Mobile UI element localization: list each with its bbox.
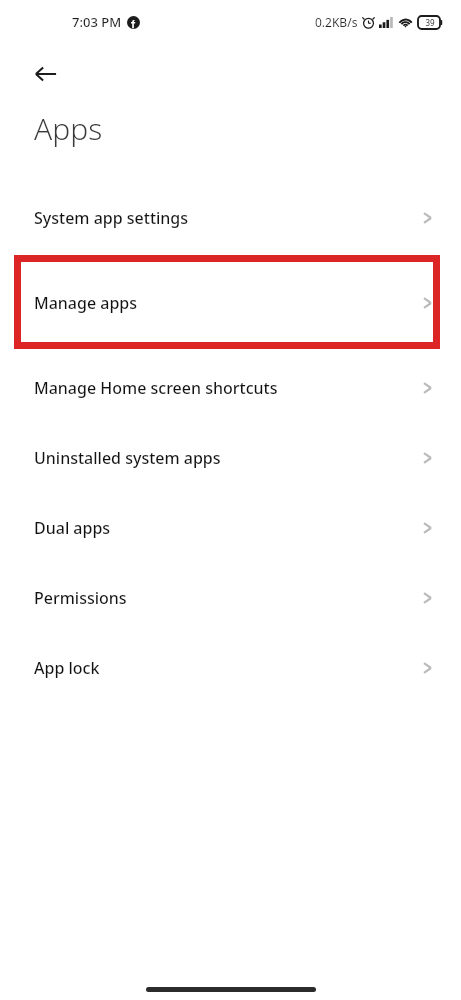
- staticText: Uninstalled system apps: [34, 447, 422, 469]
- button[interactable]: System app settings: [0, 183, 461, 253]
- staticText: 0.2KB/s: [315, 14, 358, 30]
- button[interactable]: Manage Home screen shortcuts: [0, 353, 461, 423]
- button[interactable]: Uninstalled system apps: [0, 423, 461, 493]
- button[interactable]: Dual apps: [0, 493, 461, 563]
- staticText: Manage Home screen shortcuts: [34, 377, 422, 399]
- staticText: 39: [425, 17, 435, 28]
- staticText: Permissions: [34, 587, 422, 609]
- button[interactable]: Permissions: [0, 563, 461, 633]
- staticText: App lock: [34, 657, 422, 679]
- staticText: Manage apps: [34, 292, 422, 314]
- staticText: Dual apps: [34, 517, 422, 539]
- button[interactable]: Back: [22, 50, 70, 98]
- button[interactable]: Manage apps: [0, 253, 461, 353]
- staticText: System app settings: [34, 207, 422, 229]
- staticText: 7:03 PM: [72, 13, 122, 31]
- button[interactable]: App lock: [0, 633, 461, 703]
- staticText: Apps: [34, 108, 103, 149]
